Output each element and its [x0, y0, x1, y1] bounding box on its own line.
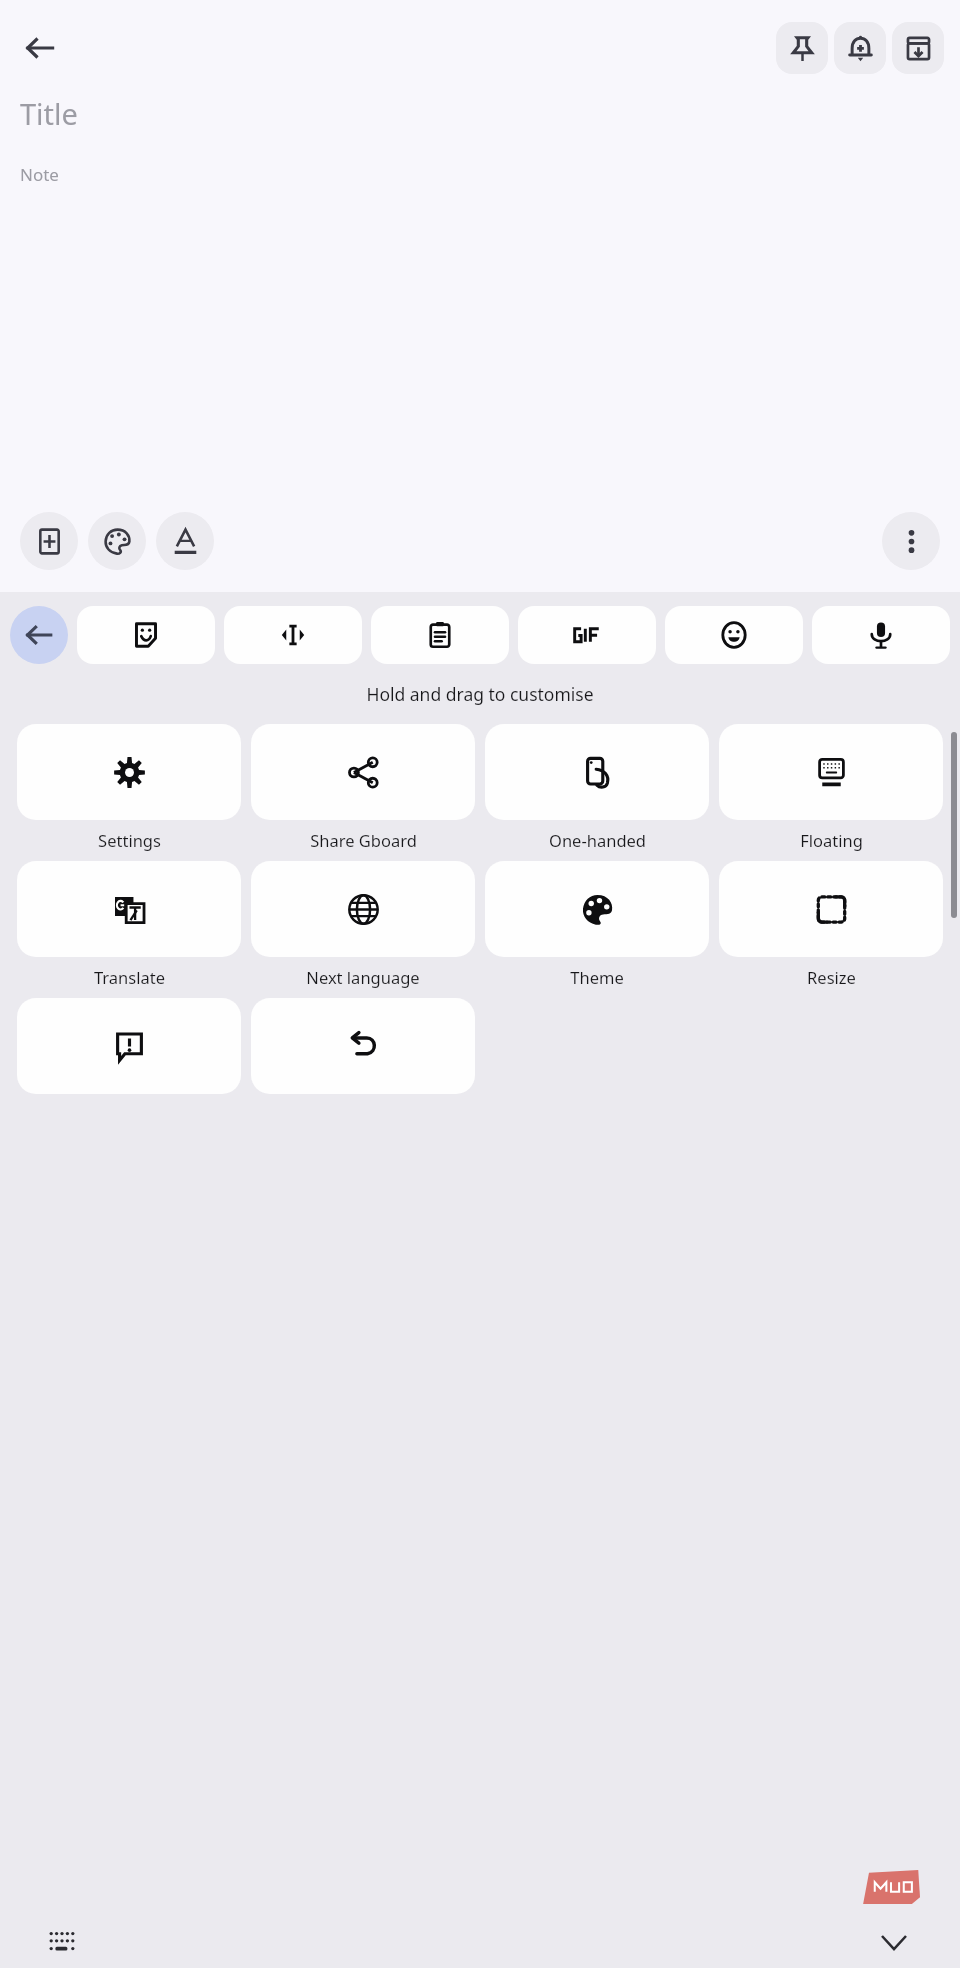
staticText: Theme [570, 966, 624, 988]
button[interactable]: Next language [251, 861, 475, 988]
button[interactable]: Clipboard [371, 606, 509, 664]
staticText: Note [20, 163, 59, 186]
staticText: Next language [306, 966, 420, 988]
staticText: Settings [98, 829, 161, 851]
button[interactable]: Feedback [17, 998, 241, 1094]
staticText: Translate [94, 966, 165, 988]
button[interactable]: Undo [251, 998, 475, 1094]
button[interactable]: Floating [719, 724, 943, 851]
button[interactable]: Text editing [224, 606, 362, 664]
button[interactable]: Close [870, 1918, 918, 1966]
button[interactable]: Resize [719, 861, 943, 988]
button[interactable]: Settings [17, 724, 241, 851]
button[interactable]: Back [10, 606, 68, 664]
button[interactable]: Share Gboard [251, 724, 475, 851]
button[interactable]: Translate [17, 861, 241, 988]
button[interactable]: Back [14, 22, 66, 74]
staticText: Floating [800, 829, 863, 851]
button[interactable]: Text formatting [156, 512, 214, 570]
button[interactable]: Archive [892, 22, 944, 74]
button[interactable]: GIF [518, 606, 656, 664]
staticText: Resize [807, 966, 856, 988]
button[interactable]: Add [20, 512, 78, 570]
button[interactable]: Voice input [812, 606, 950, 664]
button[interactable]: One-handed [485, 724, 709, 851]
staticText: Share Gboard [310, 829, 417, 851]
staticText: Title [20, 94, 78, 133]
button[interactable]: Background colour [88, 512, 146, 570]
button[interactable]: More options [882, 512, 940, 570]
button[interactable]: Keyboard [38, 1918, 86, 1966]
button[interactable]: Stickers [77, 606, 215, 664]
button[interactable]: Reminder [834, 22, 886, 74]
button[interactable]: Emoji [665, 606, 803, 664]
staticText: Hold and drag to customise [0, 682, 960, 706]
button[interactable]: Theme [485, 861, 709, 988]
staticText: One-handed [549, 829, 646, 851]
button[interactable]: Pin [776, 22, 828, 74]
